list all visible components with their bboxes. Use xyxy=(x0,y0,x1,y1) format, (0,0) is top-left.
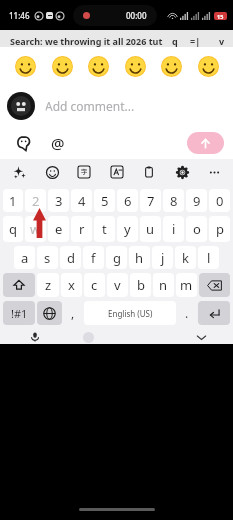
staticText: 00:00 xyxy=(126,10,147,21)
button[interactable]: Enter xyxy=(198,301,230,325)
button[interactable]: 8 xyxy=(163,189,184,212)
staticText: g xyxy=(113,249,121,267)
staticText: j xyxy=(161,249,165,267)
button[interactable]: 4 xyxy=(71,189,92,212)
staticText: n xyxy=(159,276,168,294)
button[interactable] xyxy=(118,49,152,83)
button[interactable]: Translate xyxy=(73,161,95,183)
button[interactable]: k xyxy=(175,246,196,269)
button[interactable]: More xyxy=(203,161,225,183)
button[interactable]: 2 xyxy=(25,189,46,212)
staticText: 1 xyxy=(9,192,17,210)
staticText: 15 xyxy=(217,13,224,20)
button[interactable]: Hide keyboard xyxy=(194,330,208,344)
staticText: =| xyxy=(190,35,201,47)
button[interactable]: Voice input xyxy=(28,330,42,344)
staticText: b xyxy=(137,276,145,294)
staticText: English (US) xyxy=(108,308,153,319)
button[interactable]: 3 xyxy=(48,189,69,212)
button[interactable]: Send xyxy=(187,132,224,154)
button[interactable]: p xyxy=(209,216,230,242)
button[interactable]: i xyxy=(163,216,184,242)
button[interactable]: 9 xyxy=(186,189,207,212)
button[interactable] xyxy=(154,49,188,83)
button[interactable]: 6 xyxy=(117,189,138,212)
button[interactable]: , xyxy=(64,301,82,325)
button[interactable]: e xyxy=(48,216,69,242)
button[interactable]: s xyxy=(37,246,58,269)
button[interactable]: q xyxy=(3,216,23,242)
button[interactable]: n xyxy=(153,273,174,297)
staticText: s xyxy=(44,249,51,267)
button[interactable]: Change language xyxy=(37,301,62,325)
button[interactable]: c xyxy=(84,273,105,297)
button[interactable] xyxy=(45,49,79,83)
button[interactable]: Shift xyxy=(3,273,35,297)
button[interactable]: a xyxy=(14,246,35,269)
button[interactable]: x xyxy=(61,273,82,297)
button[interactable] xyxy=(191,49,225,83)
staticText: e xyxy=(55,220,63,238)
button[interactable]: f xyxy=(83,246,104,269)
staticText: k xyxy=(182,249,189,267)
button[interactable]: z xyxy=(37,273,59,297)
button[interactable]: l xyxy=(198,246,219,269)
staticText: d xyxy=(67,249,75,267)
button[interactable]: b xyxy=(130,273,151,297)
staticText: i xyxy=(172,220,176,238)
button[interactable]: w xyxy=(25,216,46,242)
staticText: @ xyxy=(51,133,65,153)
button[interactable]: 1 xyxy=(3,189,23,212)
staticText: 4 xyxy=(78,192,86,210)
button[interactable]: Mention xyxy=(47,132,69,154)
staticText: 6 xyxy=(124,192,132,210)
button[interactable]: d xyxy=(60,246,81,269)
button[interactable]: h xyxy=(129,246,150,269)
staticText: 9 xyxy=(193,192,201,210)
staticText: y xyxy=(124,220,131,238)
staticText: o xyxy=(193,220,201,238)
staticText: p xyxy=(216,220,224,238)
button[interactable]: t xyxy=(94,216,115,242)
staticText: 11:46 xyxy=(9,10,30,21)
button[interactable]: !#1 xyxy=(3,301,35,325)
button[interactable]: English (US) xyxy=(84,301,176,325)
button[interactable]: o xyxy=(186,216,207,242)
button[interactable]: Settings xyxy=(171,161,193,183)
button[interactable]: Add comment... xyxy=(45,89,222,123)
staticText: 0 xyxy=(216,192,224,210)
button[interactable]: Text editing xyxy=(106,161,128,183)
button[interactable]: Profile photo xyxy=(7,92,35,120)
button[interactable]: v xyxy=(107,273,128,297)
button[interactable]: Clipboard xyxy=(138,161,160,183)
staticText: 5 xyxy=(101,192,109,210)
staticText: , xyxy=(71,305,75,321)
staticText: q xyxy=(9,220,17,238)
staticText: 7 xyxy=(147,192,155,210)
button[interactable]: y xyxy=(117,216,138,242)
button[interactable]: u xyxy=(140,216,161,242)
button[interactable]: m xyxy=(176,273,197,297)
staticText: m xyxy=(180,276,193,294)
button[interactable]: g xyxy=(106,246,127,269)
staticText: !#1 xyxy=(11,306,28,321)
button[interactable]: Emoji xyxy=(41,161,63,183)
staticText: Search: we throwing it all 2026 tut xyxy=(10,35,163,47)
button[interactable]: . xyxy=(178,301,196,325)
button[interactable]: r xyxy=(71,216,92,242)
button[interactable]: 0 xyxy=(209,189,230,212)
button[interactable]: 7 xyxy=(140,189,161,212)
staticText: 3 xyxy=(55,192,63,210)
button[interactable]: 5 xyxy=(94,189,115,212)
staticText: u xyxy=(146,220,155,238)
button[interactable]: Magic compose xyxy=(8,161,30,183)
staticText: a xyxy=(21,249,29,267)
button[interactable]: Backspace xyxy=(199,273,230,297)
staticText: x xyxy=(68,276,75,294)
button[interactable]: j xyxy=(152,246,173,269)
button[interactable]: Stickers xyxy=(12,132,34,154)
staticText: 字 xyxy=(81,168,87,176)
button[interactable] xyxy=(8,49,42,83)
button[interactable] xyxy=(81,49,115,83)
staticText: t xyxy=(102,220,107,238)
